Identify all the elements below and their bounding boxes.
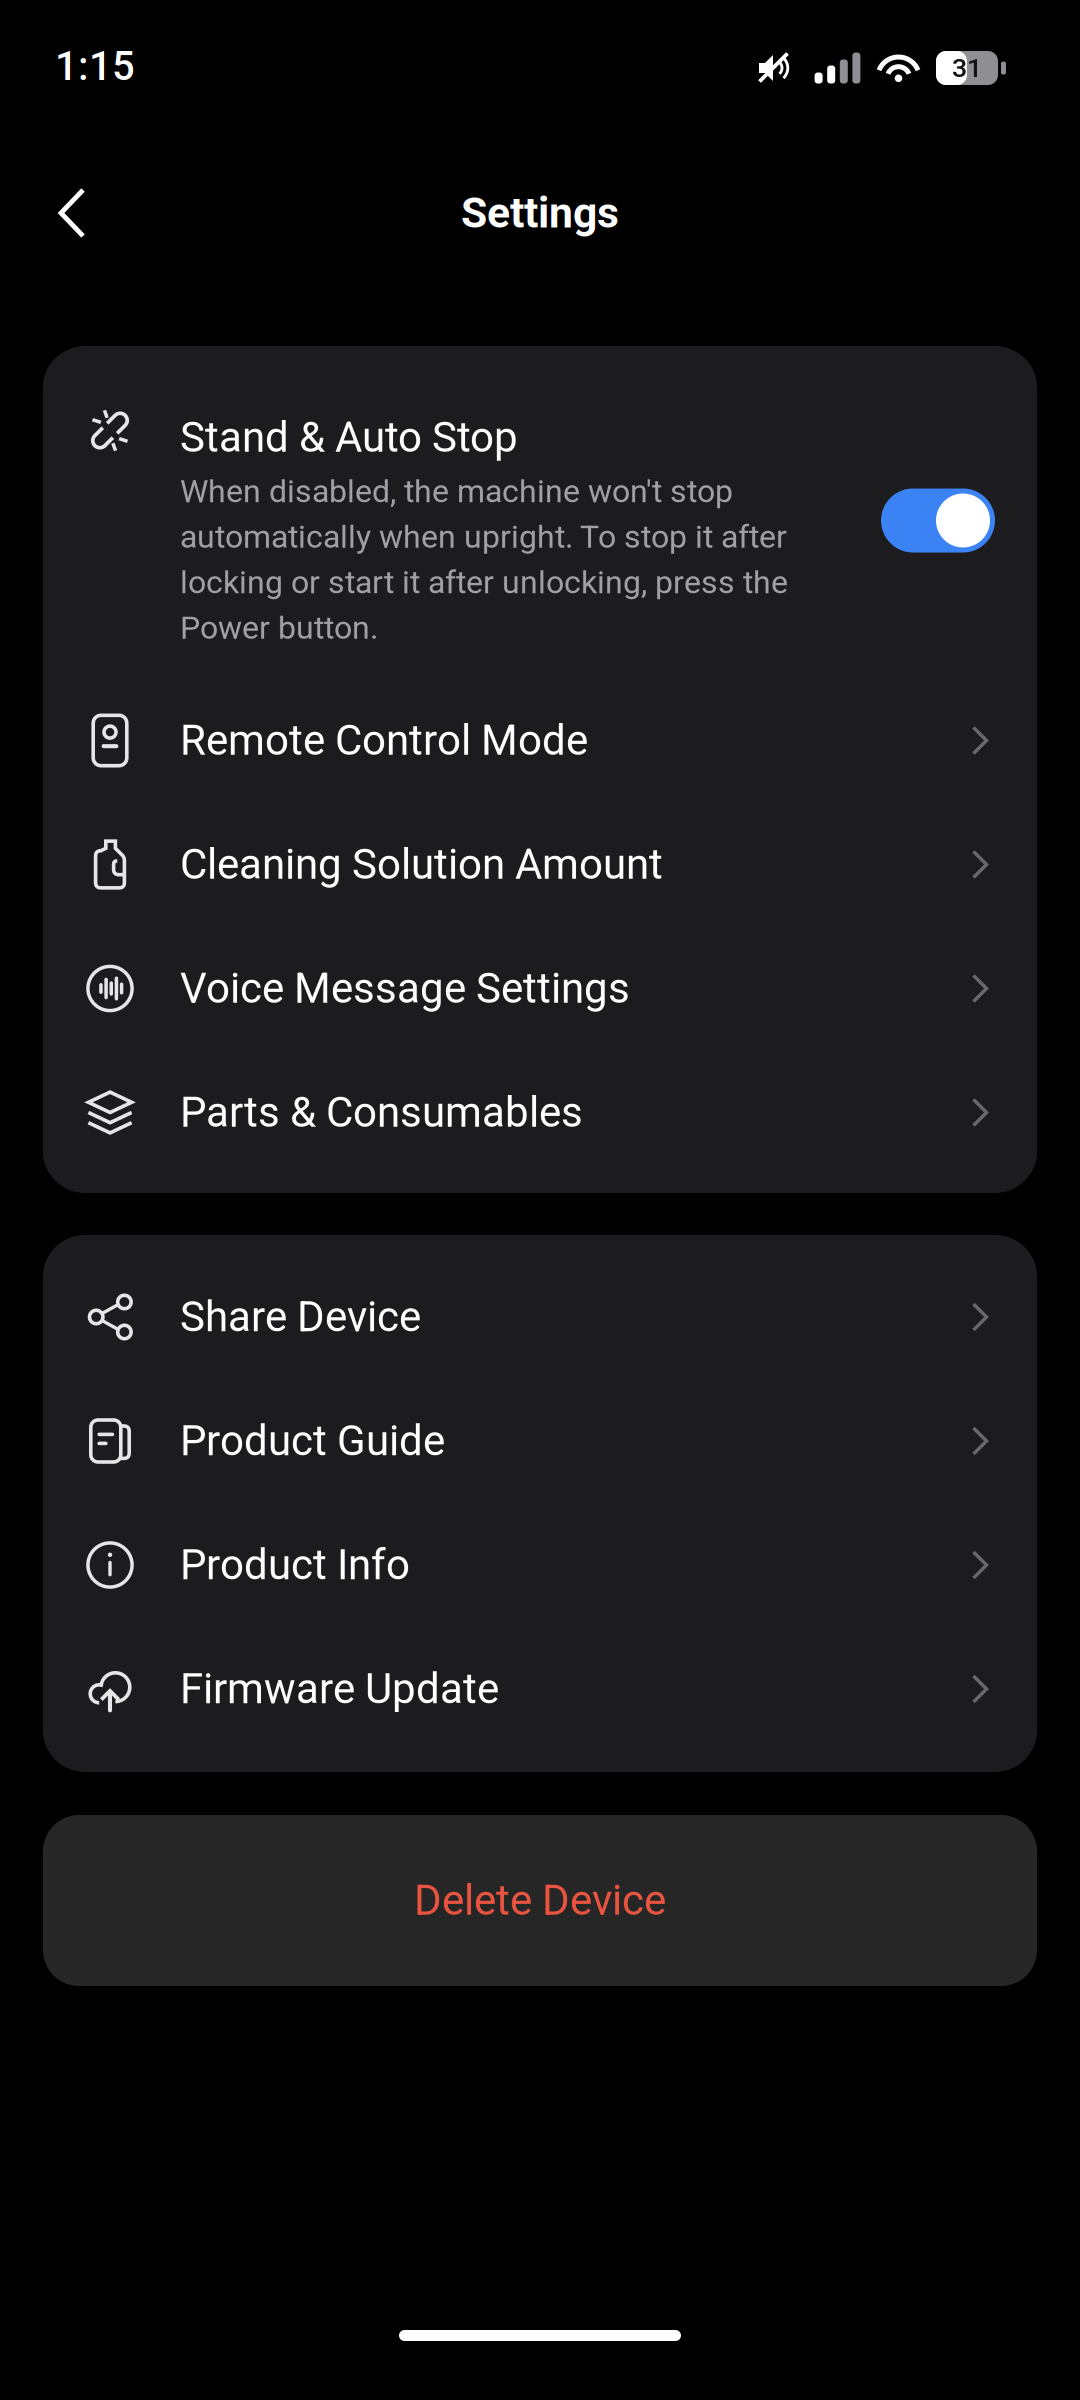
staticText: Cleaning Solution Amount: [180, 840, 663, 889]
staticText: locking or start it after unlocking, pre…: [180, 563, 788, 601]
button[interactable]: Remote Control Mode: [43, 678, 1037, 802]
staticText: Parts & Consumables: [180, 1088, 583, 1137]
button[interactable]: Cleaning Solution Amount: [43, 802, 1037, 926]
button[interactable]: Product Info: [43, 1503, 1037, 1627]
button[interactable]: Delete Device: [43, 1815, 1037, 1986]
staticText: Product Guide: [180, 1416, 445, 1466]
staticText: Voice Message Settings: [180, 964, 630, 1013]
staticText: 1:15: [55, 43, 135, 90]
button[interactable]: Firmware Update: [43, 1627, 1037, 1751]
staticText: Firmware Update: [180, 1664, 499, 1714]
staticText: Product Info: [180, 1540, 410, 1590]
staticText: 31: [952, 52, 982, 84]
staticText: When disabled, the machine won't stop: [180, 472, 733, 510]
button[interactable]: Back: [22, 163, 122, 263]
button[interactable]: Share Device: [43, 1255, 1037, 1379]
button[interactable]: Product Guide: [43, 1379, 1037, 1503]
button[interactable]: Parts & Consumables: [43, 1050, 1037, 1174]
staticText: Settings: [461, 188, 619, 238]
staticText: Power button.: [180, 609, 378, 646]
staticText: automatically when upright. To stop it a…: [180, 518, 787, 555]
staticText: Share Device: [180, 1292, 421, 1342]
staticText: Delete Device: [414, 1876, 666, 1925]
button[interactable]: Stand and Auto Stop: [881, 488, 995, 552]
button[interactable]: Voice Message Settings: [43, 926, 1037, 1050]
staticText: Stand & Auto Stop: [180, 413, 518, 462]
staticText: Remote Control Mode: [180, 716, 588, 765]
